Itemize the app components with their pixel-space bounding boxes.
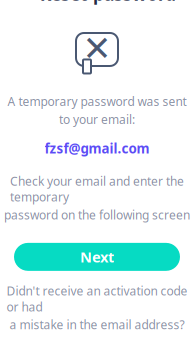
staticText: fzsf@gmail.com bbox=[44, 139, 149, 157]
staticText: password on the following screen bbox=[4, 207, 190, 223]
staticText: ✕ bbox=[82, 29, 111, 68]
staticText: a mistake in the email address? bbox=[9, 317, 184, 333]
staticText: Didn't receive an activation code or had bbox=[6, 283, 187, 315]
staticText: Next bbox=[80, 247, 114, 267]
staticText: to your email: bbox=[59, 111, 135, 127]
staticText: A temporary password was sent bbox=[7, 93, 186, 109]
staticText: Check your email and enter the temporary bbox=[10, 173, 184, 205]
staticText: Reset password bbox=[40, 0, 176, 5]
button[interactable]: Next bbox=[14, 243, 180, 271]
